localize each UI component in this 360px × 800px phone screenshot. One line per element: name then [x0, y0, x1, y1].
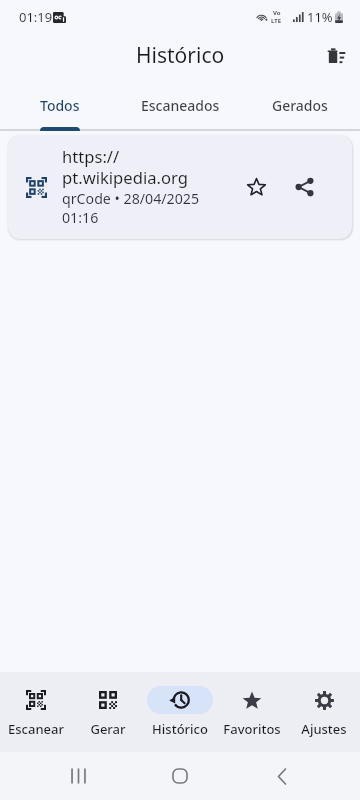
staticText: 11%: [307, 8, 333, 26]
button[interactable]: Limpar histórico: [314, 33, 358, 77]
button[interactable]: Todos: [0, 86, 120, 131]
button[interactable]: Ajustes: [288, 672, 360, 738]
button[interactable]: Gerados: [240, 86, 360, 131]
button[interactable]: Histórico: [144, 672, 216, 738]
staticText: Todos: [40, 96, 80, 115]
staticText: Escaneados: [141, 96, 220, 115]
staticText: https:// pt.wikipedia.org: [62, 145, 188, 189]
button[interactable]: Favoritos: [216, 672, 288, 738]
staticText: Ajustes: [301, 720, 347, 738]
button[interactable]: Favoritar: [235, 166, 277, 208]
staticText: Gerar: [90, 720, 126, 738]
staticText: Vo: [273, 9, 281, 17]
staticText: qrCode • 28/04/2025 01:16: [62, 189, 200, 227]
button[interactable]: Recentes: [54, 752, 102, 800]
staticText: LTE: [271, 17, 282, 25]
staticText: Histórico: [152, 720, 208, 738]
staticText: Favoritos: [223, 720, 281, 738]
button[interactable]: Escaneados: [120, 86, 240, 131]
staticText: 01:19: [19, 8, 53, 26]
staticText: Gerados: [272, 96, 328, 115]
staticText: Escanear: [8, 720, 64, 738]
button[interactable]: Voltar: [258, 752, 306, 800]
button[interactable]: Escanear: [0, 672, 72, 738]
button[interactable]: Compartilhar: [283, 166, 325, 208]
button[interactable]: https:// pt.wikipedia.org: [8, 135, 352, 239]
staticText: Histórico: [136, 41, 225, 70]
button[interactable]: Gerar: [72, 672, 144, 738]
button[interactable]: Início: [156, 752, 204, 800]
